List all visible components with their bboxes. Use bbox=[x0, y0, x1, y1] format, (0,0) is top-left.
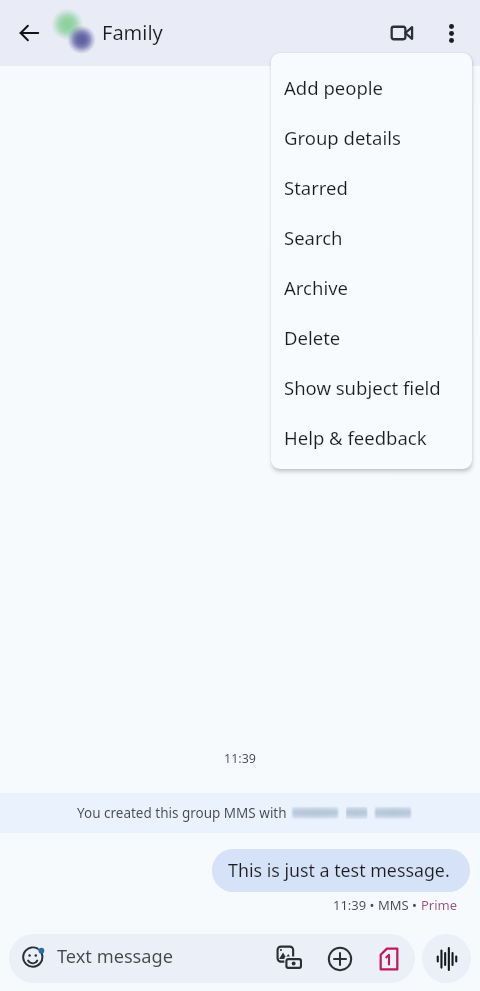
button[interactable]: Record audio message bbox=[422, 934, 471, 983]
button[interactable]: Send picture bbox=[271, 939, 311, 979]
button[interactable]: Add attachment bbox=[320, 939, 360, 979]
staticText: Group details bbox=[284, 125, 401, 150]
staticText: 11:39 • MMS • bbox=[333, 896, 421, 914]
staticText: This is just a test message. bbox=[228, 858, 450, 882]
button[interactable]: Archive bbox=[271, 262, 472, 312]
staticText: 11:39 bbox=[0, 750, 480, 767]
button[interactable]: Help & feedback bbox=[271, 412, 472, 462]
staticText: Delete bbox=[284, 325, 341, 350]
staticText: Help & feedback bbox=[284, 425, 427, 450]
button[interactable]: Back bbox=[5, 9, 53, 57]
button[interactable]: This is just a test message. bbox=[212, 849, 470, 892]
button[interactable]: Text message bbox=[9, 934, 415, 983]
staticText: Add people bbox=[284, 75, 383, 100]
button[interactable]: Show subject field bbox=[271, 362, 472, 412]
staticText: Starred bbox=[284, 175, 348, 200]
button[interactable]: Video call bbox=[378, 9, 426, 57]
staticText: Archive bbox=[284, 275, 349, 300]
button[interactable]: Search bbox=[271, 212, 472, 262]
staticText: You created this group MMS with bbox=[77, 804, 291, 822]
button[interactable]: SIM card 1 bbox=[369, 939, 409, 979]
button[interactable]: Add people bbox=[271, 62, 472, 112]
staticText: Family bbox=[102, 19, 163, 46]
staticText: Text message bbox=[57, 944, 173, 969]
staticText: Prime bbox=[421, 896, 458, 914]
staticText: Show subject field bbox=[284, 375, 441, 400]
button[interactable]: Group details bbox=[271, 112, 472, 162]
staticText: Search bbox=[284, 225, 343, 250]
button[interactable]: More options bbox=[427, 9, 475, 57]
button[interactable]: Delete bbox=[271, 312, 472, 362]
button[interactable]: Starred bbox=[271, 162, 472, 212]
